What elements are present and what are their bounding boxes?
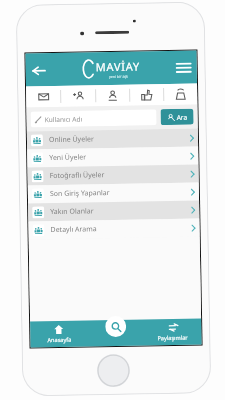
staticText: MAVİAY [96, 58, 141, 74]
button[interactable]: Detaylı Arama [28, 218, 200, 239]
button[interactable]: Yeni Üyeler [27, 146, 198, 167]
button[interactable]: Kullanıcı Adı [30, 109, 157, 127]
button[interactable]: Yakın Olanlar [28, 200, 199, 221]
button[interactable]: Ara [160, 109, 194, 125]
staticText: Ara [176, 113, 188, 122]
button[interactable]: Online Üyeler [27, 128, 198, 149]
staticText: Fotoğraflı Üyeler [49, 169, 191, 181]
staticText: Online Üyeler [49, 133, 190, 145]
staticText: Detaylı Arama [50, 223, 192, 235]
staticText: Yeni Üyeler [49, 151, 190, 163]
button[interactable]: Likes [130, 84, 163, 106]
button[interactable]: Gifts [164, 83, 197, 105]
button[interactable]: Profile [96, 85, 129, 106]
button[interactable]: Paylaşımlar [144, 318, 201, 345]
button[interactable]: Messages [26, 86, 60, 107]
staticText: Yakın Olanlar [50, 205, 191, 217]
button[interactable]: Fotoğraflı Üyeler [27, 164, 199, 185]
button[interactable]: Search [105, 316, 126, 337]
button[interactable]: Add friend [61, 85, 95, 107]
button[interactable]: Menu [170, 54, 197, 81]
staticText: Kullanıcı Adı [44, 114, 83, 124]
staticText: yeni bir aşk [109, 74, 129, 79]
staticText: Son Giriş Yapanlar [50, 187, 191, 199]
staticText: Paylaşımlar [157, 334, 188, 342]
button[interactable]: Son Giriş Yapanlar [28, 182, 199, 203]
button[interactable]: Anasayfa [30, 320, 87, 347]
staticText: Anasayfa [47, 336, 71, 344]
button[interactable]: Back [25, 57, 52, 83]
